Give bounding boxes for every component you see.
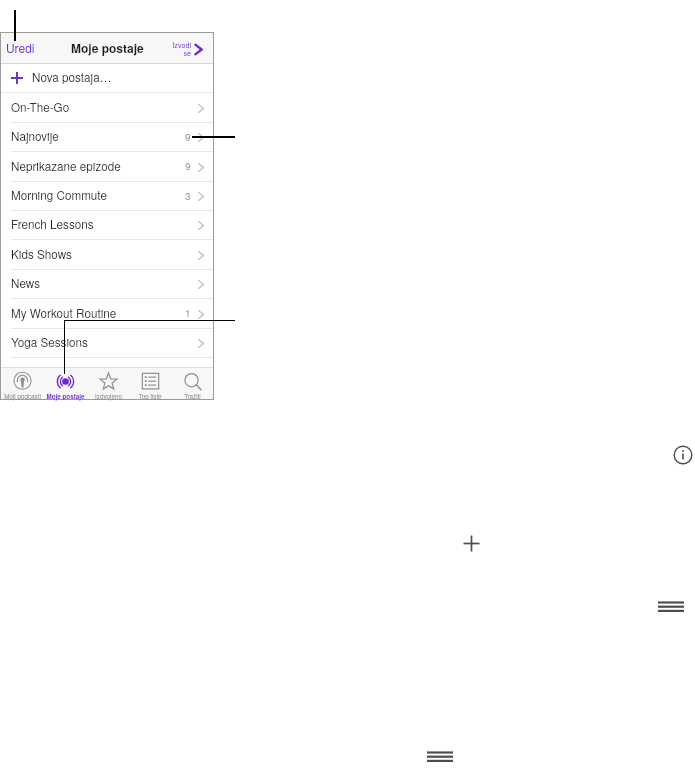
button[interactable]: Nova postaja… — [1, 64, 213, 93]
staticText: Moje postaje — [46, 392, 85, 401]
button[interactable]: Info — [673, 445, 693, 465]
staticText: Moje postaje — [71, 39, 144, 56]
staticText: Izdvojeno — [95, 392, 122, 401]
staticText: News — [11, 275, 41, 292]
button[interactable]: Kids Shows — [1, 240, 213, 270]
staticText: 1 — [185, 306, 191, 320]
staticText: Moji podcasti — [4, 392, 41, 401]
staticText: Kids Shows — [11, 246, 72, 263]
staticText: Izvodi se — [172, 40, 191, 58]
staticText: 3 — [185, 189, 191, 203]
button[interactable]: Moji podcasti — [1, 367, 44, 399]
staticText: Nova postaja… — [32, 69, 112, 86]
button[interactable]: My Workout Routine — [1, 299, 213, 329]
button[interactable]: On-The-Go — [1, 93, 213, 123]
staticText: Neprikazane epizode — [11, 158, 121, 175]
button[interactable]: Menu — [427, 750, 453, 763]
staticText: On-The-Go — [11, 99, 70, 116]
button[interactable]: Tražiti — [171, 367, 213, 399]
staticText: 9 — [185, 159, 191, 173]
button[interactable]: Add — [463, 535, 480, 552]
button[interactable]: French Lessons — [1, 211, 213, 240]
staticText: My Workout Routine — [11, 305, 117, 322]
staticText: 9 — [185, 130, 191, 144]
button[interactable]: Top liste — [129, 367, 171, 399]
button[interactable]: Uredi — [6, 39, 35, 56]
button[interactable]: Najnovije — [1, 123, 213, 152]
button[interactable]: Moje postaje — [44, 367, 87, 399]
button[interactable]: Morning Commute — [1, 182, 213, 211]
button[interactable]: Yoga Sessions — [1, 329, 213, 358]
button[interactable]: Izdvojeno — [87, 367, 129, 399]
staticText: Najnovije — [11, 128, 59, 145]
staticText: French Lessons — [11, 216, 94, 233]
staticText: Top liste — [138, 392, 162, 401]
button[interactable]: Menu — [658, 600, 684, 613]
staticText: Yoga Sessions — [11, 334, 88, 351]
staticText: Morning Commute — [11, 187, 107, 204]
button[interactable]: Izvodi se — [172, 40, 203, 58]
staticText: Tražiti — [184, 392, 201, 401]
button[interactable]: Neprikazane epizode — [1, 152, 213, 182]
button[interactable]: News — [1, 270, 213, 299]
